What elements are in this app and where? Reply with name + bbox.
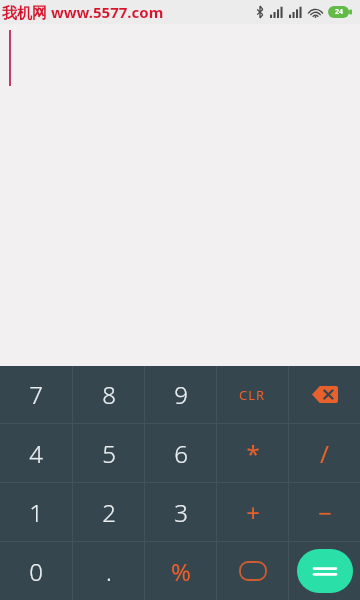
staticText: 0 [29, 555, 43, 588]
button[interactable]: 7 [0, 366, 72, 423]
button[interactable]: 9 [145, 366, 216, 423]
button[interactable]: − [289, 483, 360, 541]
staticText: 1 [29, 496, 43, 529]
button[interactable]: Equals [289, 542, 360, 600]
staticText: 24 [335, 7, 344, 17]
button[interactable]: % [145, 542, 216, 600]
staticText: * [246, 437, 260, 470]
staticText: 我机网 www.5577.com [2, 2, 164, 22]
button[interactable]: 5 [73, 424, 144, 482]
button[interactable]: Backspace [289, 366, 360, 423]
button[interactable]: 8 [73, 366, 144, 423]
button[interactable]: * [217, 424, 288, 482]
staticText: . [106, 555, 112, 588]
button[interactable]: / [289, 424, 360, 482]
button[interactable]: 6 [145, 424, 216, 482]
staticText: 9 [174, 378, 188, 411]
button[interactable]: . [73, 542, 144, 600]
button[interactable]: CLR [217, 366, 288, 423]
staticText: % [171, 555, 191, 588]
staticText: / [320, 437, 329, 470]
staticText: 8 [102, 378, 116, 411]
button[interactable]: 2 [73, 483, 144, 541]
staticText: 6 [174, 437, 188, 470]
button[interactable]: Parentheses [217, 542, 288, 600]
button[interactable]: 3 [145, 483, 216, 541]
staticText: 4 [29, 437, 43, 470]
staticText: 3 [174, 496, 188, 529]
staticText: 7 [29, 378, 43, 411]
button[interactable]: 1 [0, 483, 72, 541]
staticText: + [246, 496, 260, 529]
staticText: 2 [102, 496, 116, 529]
button[interactable]: 0 [0, 542, 72, 600]
button[interactable]: Equals [297, 549, 353, 593]
button[interactable]: 4 [0, 424, 72, 482]
staticText: 5 [102, 437, 116, 470]
staticText: − [318, 496, 332, 529]
staticText: CLR [239, 386, 266, 404]
button[interactable]: + [217, 483, 288, 541]
